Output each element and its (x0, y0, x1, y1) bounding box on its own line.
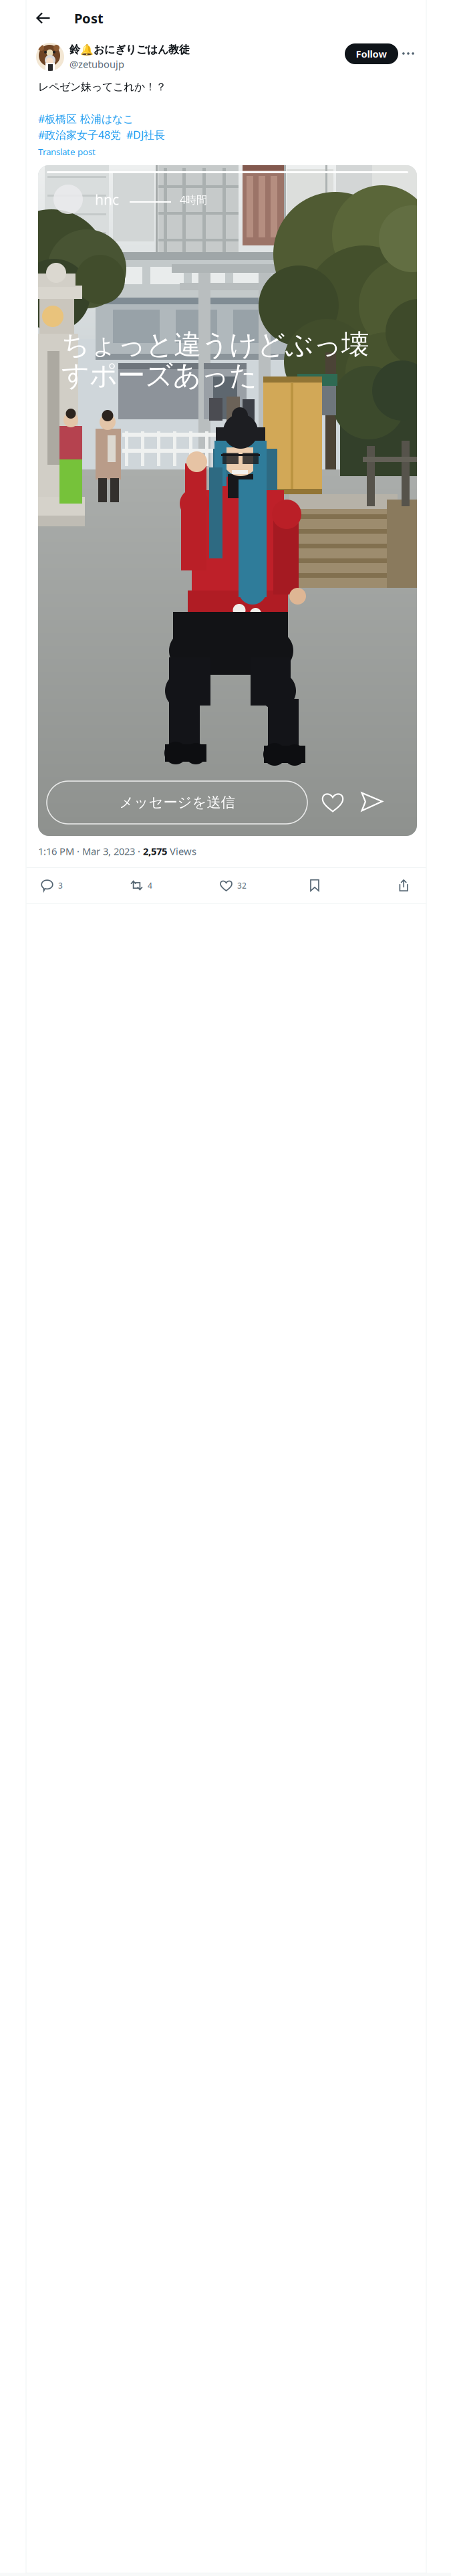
button[interactable]: Bookmark (303, 874, 326, 897)
button[interactable]: More (397, 42, 420, 65)
staticText: 4時間 (180, 193, 207, 207)
staticText: メッセージを送信 (119, 794, 235, 811)
staticText: 32 (237, 880, 247, 891)
button[interactable]: #板橋区 松浦はなこ (38, 112, 134, 126)
staticText: 鈴🔔おにぎりごはん教徒 (69, 43, 190, 56)
staticText: 2,575 (143, 845, 167, 858)
button[interactable]: Share (392, 874, 415, 897)
staticText: 1:16 PM · Mar 3, 2023 · (38, 845, 143, 858)
staticText: 3 (58, 880, 63, 891)
staticText: すポーズあった (61, 358, 257, 392)
staticText: Views (167, 845, 196, 858)
staticText: #板橋区 松浦はなこ (38, 112, 134, 126)
button[interactable]: 鈴🔔おにぎりごはん教徒 @zetuboujp (36, 43, 190, 71)
staticText: @zetuboujp (69, 58, 124, 71)
staticText: Translate post (38, 146, 96, 158)
button[interactable]: 32 Likes (220, 874, 247, 897)
button[interactable]: Back (28, 3, 59, 33)
staticText: Post (74, 9, 104, 27)
staticText: レペゼン妹ってこれか！？ (38, 80, 166, 93)
staticText: 4 (148, 880, 152, 891)
button[interactable]: Video (38, 165, 417, 836)
staticText: hnc (95, 190, 119, 209)
button[interactable]: Follow (345, 43, 398, 64)
staticText: #政治家女子48党 #DJ社長 (38, 128, 165, 142)
staticText: ちょっと違うけどぶっ壊 (61, 328, 369, 362)
button[interactable]: Translate post (38, 146, 96, 158)
staticText: Follow (356, 47, 387, 60)
button[interactable]: #政治家女子48党 #DJ社長 (38, 128, 165, 142)
button[interactable]: 4 Reposts (130, 874, 152, 897)
button[interactable]: 3 Replies (41, 874, 63, 897)
